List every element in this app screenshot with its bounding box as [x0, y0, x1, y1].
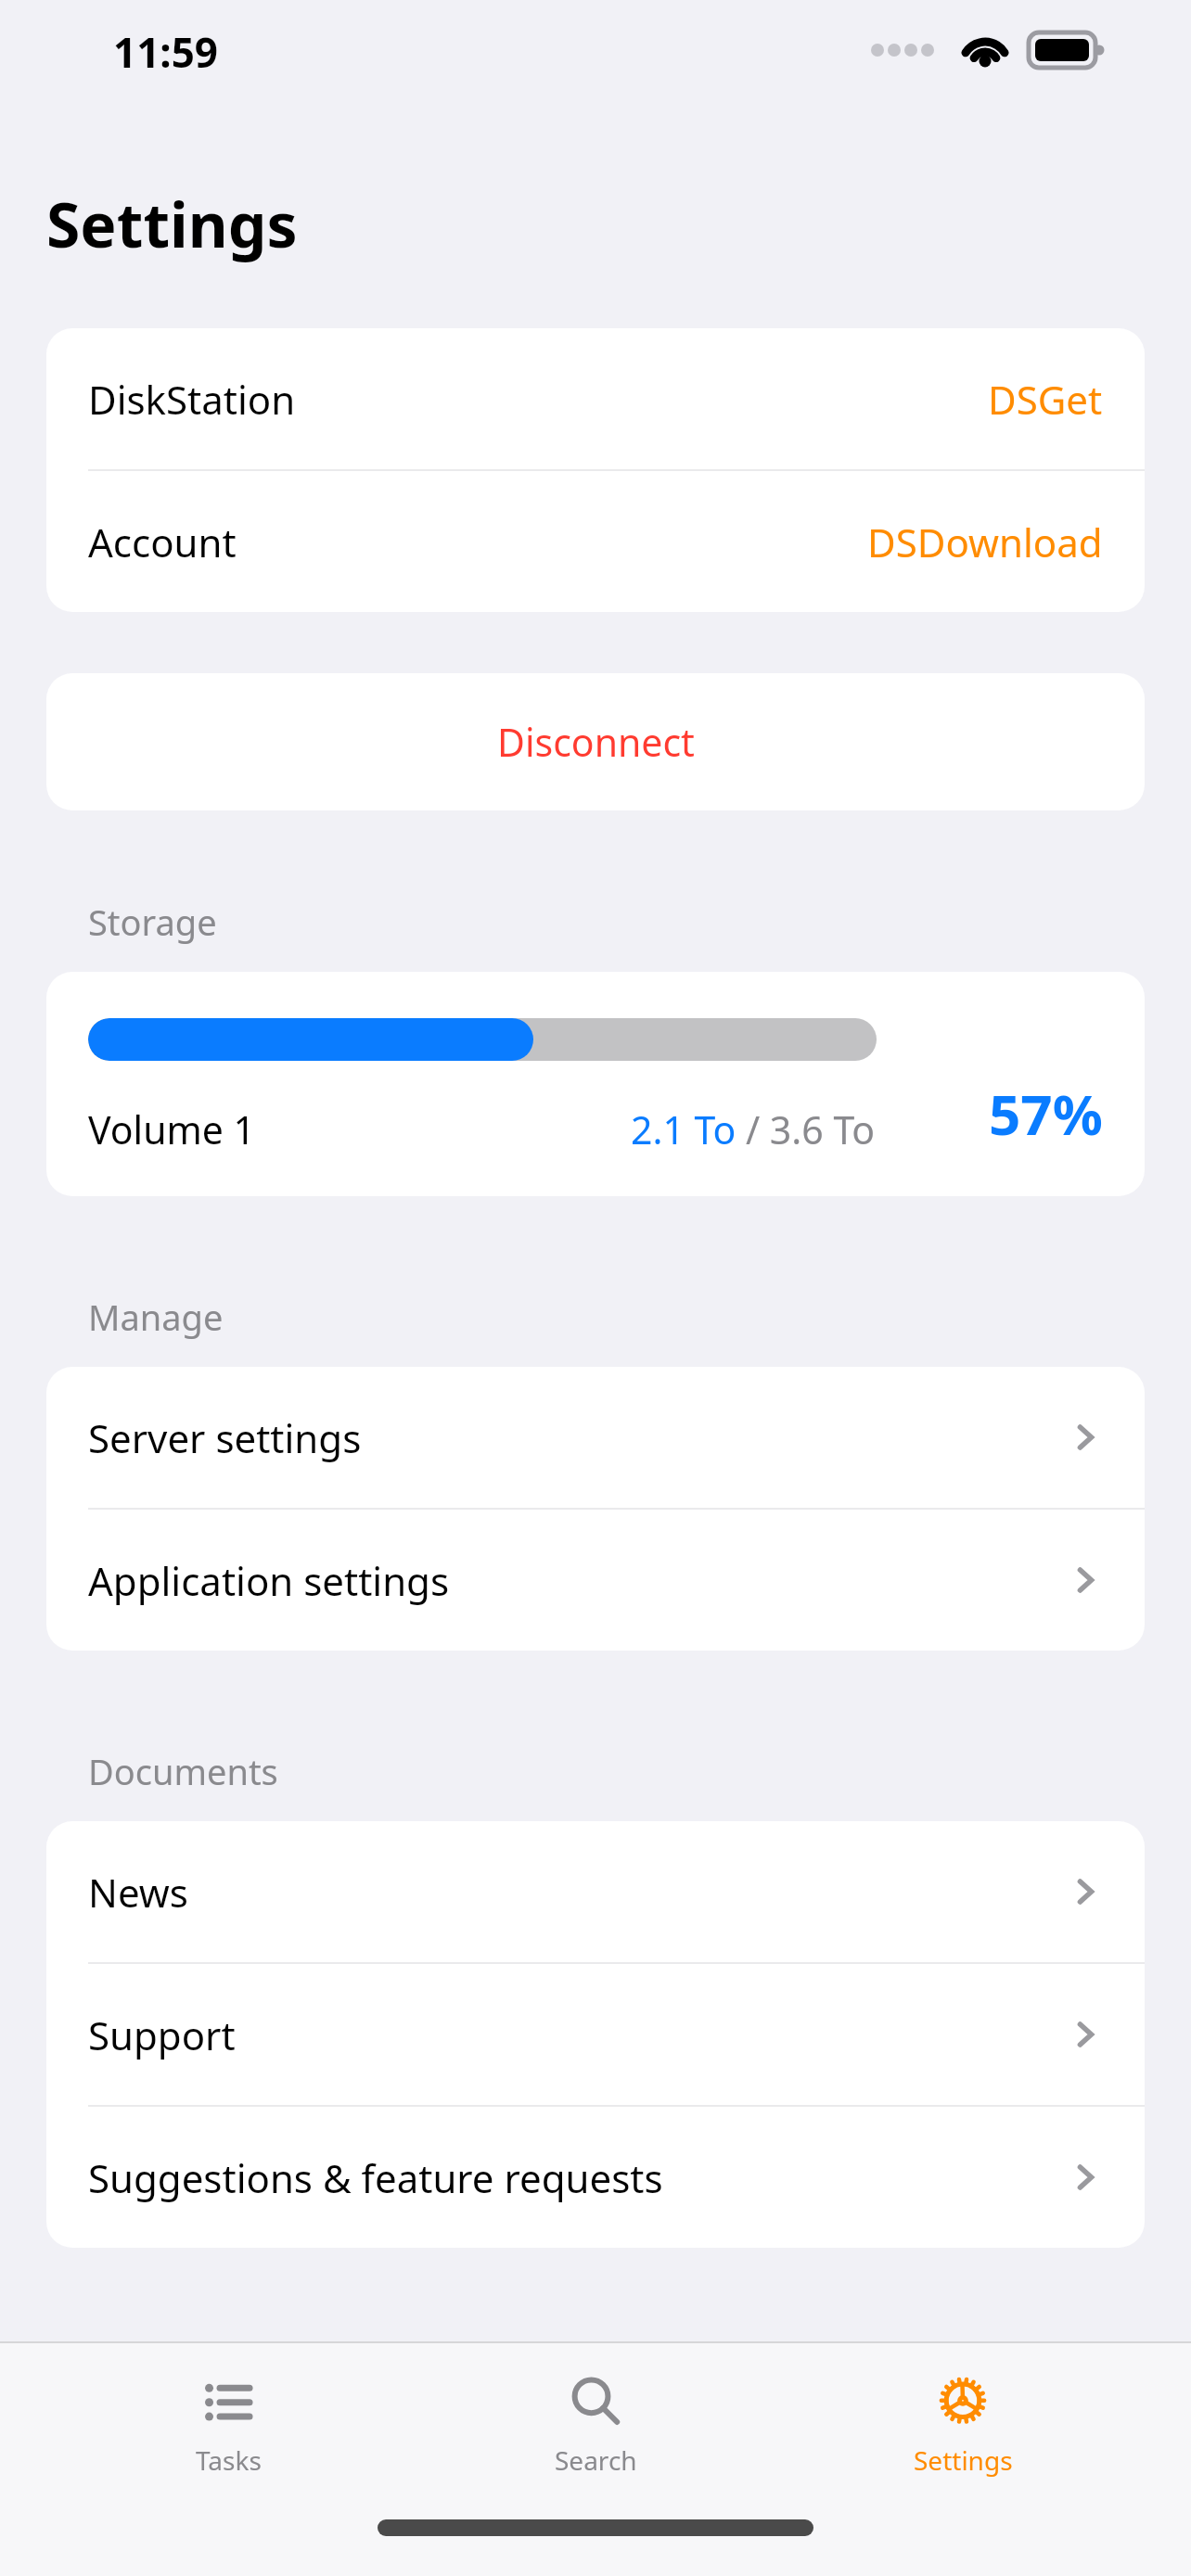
staticText: Disconnect — [497, 716, 695, 768]
staticText: Settings — [46, 182, 298, 265]
button[interactable]: Settings — [824, 2366, 1102, 2485]
staticText: 11:59 — [113, 24, 219, 80]
staticText: Application settings — [88, 1554, 450, 1607]
staticText: Storage — [88, 898, 217, 946]
staticText: 2.1 To / 3.6 To — [631, 1103, 876, 1155]
button[interactable]: Tasks — [89, 2366, 367, 2485]
staticText: Documents — [88, 1747, 278, 1795]
other: Tasks — [198, 2374, 258, 2433]
button[interactable]: Server settings — [46, 1367, 1145, 1508]
staticText: Tasks — [196, 2442, 262, 2478]
staticText: Support — [88, 2009, 236, 2061]
staticText: News — [88, 1866, 188, 1919]
button[interactable]: Disconnect — [46, 673, 1145, 810]
other: Search — [566, 2374, 625, 2433]
button[interactable]: DiskStation — [46, 328, 1145, 469]
button[interactable]: Suggestions & feature requests — [46, 2107, 1145, 2248]
staticText: Manage — [88, 1293, 224, 1341]
staticText: Server settings — [88, 1411, 362, 1464]
staticText: DSDownload — [867, 516, 1103, 568]
staticText: Search — [555, 2442, 637, 2478]
button[interactable]: Support — [46, 1964, 1145, 2105]
staticText: Settings — [914, 2442, 1013, 2478]
button[interactable]: Account — [46, 471, 1145, 612]
staticText: Account — [88, 516, 237, 568]
button[interactable]: Search — [456, 2366, 735, 2485]
staticText: DiskStation — [88, 373, 296, 426]
button[interactable]: News — [46, 1821, 1145, 1962]
staticText: Volume 1 — [88, 1103, 256, 1155]
other: Settings — [933, 2374, 992, 2433]
button[interactable]: Application settings — [46, 1510, 1145, 1651]
staticText: DSGet — [988, 373, 1103, 426]
staticText: Suggestions & feature requests — [88, 2151, 663, 2204]
staticText: 57% — [989, 1076, 1103, 1152]
